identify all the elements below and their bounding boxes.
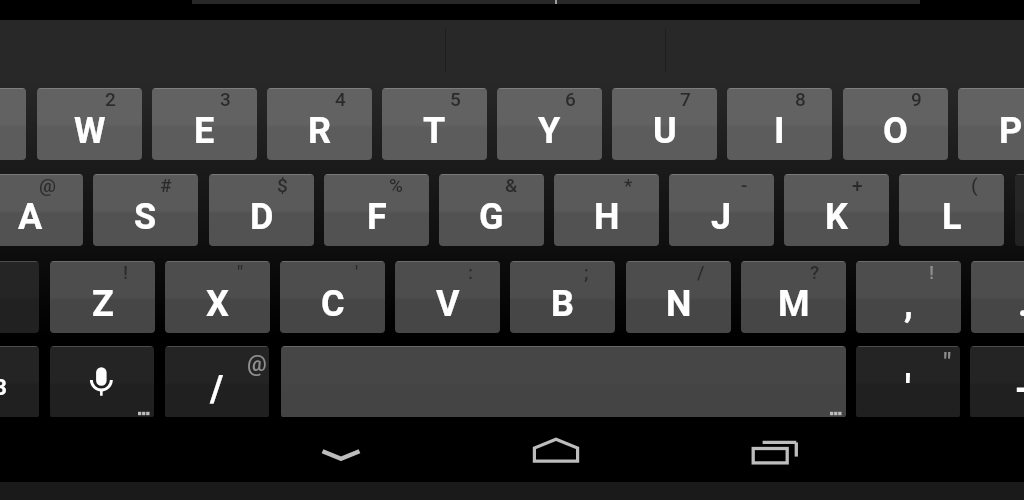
button[interactable]: Hide keyboard bbox=[291, 417, 391, 482]
staticText: R bbox=[308, 110, 331, 152]
button[interactable]: V bbox=[395, 261, 500, 333]
staticText: P bbox=[999, 110, 1023, 152]
staticText: A bbox=[18, 196, 43, 238]
staticText: ' bbox=[355, 261, 359, 283]
button[interactable]: , bbox=[856, 261, 961, 333]
staticText: M bbox=[778, 283, 810, 325]
staticText: / bbox=[210, 368, 224, 410]
staticText: J bbox=[711, 196, 732, 238]
button[interactable]: D bbox=[209, 174, 314, 246]
staticText: 9 bbox=[911, 88, 922, 110]
staticText: B bbox=[551, 283, 574, 325]
button[interactable]: L bbox=[899, 174, 1004, 246]
staticText: W bbox=[74, 110, 106, 152]
button[interactable]: B bbox=[510, 261, 615, 333]
staticText: , bbox=[904, 283, 913, 325]
button[interactable]: H bbox=[554, 174, 659, 246]
staticText: 4 bbox=[335, 88, 346, 110]
staticText: + bbox=[852, 174, 863, 196]
staticText: F bbox=[367, 196, 387, 238]
staticText: C bbox=[321, 283, 345, 325]
staticText: " bbox=[237, 261, 244, 283]
staticText: " bbox=[943, 347, 952, 377]
button[interactable]: G bbox=[439, 174, 544, 246]
button[interactable]: F bbox=[324, 174, 429, 246]
staticText: 3 bbox=[220, 88, 231, 110]
button[interactable]: . bbox=[971, 261, 1024, 333]
staticText: 6 bbox=[565, 88, 576, 110]
staticText: O bbox=[883, 110, 908, 152]
button[interactable]: Shift bbox=[0, 261, 39, 333]
staticText: : bbox=[468, 261, 474, 283]
staticText: 2 bbox=[105, 88, 116, 110]
button[interactable]: E bbox=[152, 88, 257, 160]
button[interactable]: Q bbox=[0, 88, 26, 160]
button[interactable]: Enter bbox=[1015, 174, 1024, 246]
staticText: * bbox=[624, 174, 633, 196]
button[interactable]: Space bbox=[281, 346, 846, 418]
staticText: / bbox=[697, 261, 705, 283]
staticText: Y bbox=[538, 110, 561, 152]
staticText: L bbox=[942, 196, 962, 238]
button[interactable]: J bbox=[669, 174, 774, 246]
button[interactable]: Apostrophe bbox=[856, 346, 960, 418]
button[interactable]: P bbox=[958, 88, 1024, 160]
button[interactable]: C bbox=[280, 261, 385, 333]
staticText: 7 bbox=[680, 88, 691, 110]
staticText: & bbox=[505, 174, 518, 196]
button[interactable]: Dash bbox=[970, 346, 1024, 418]
staticText: X bbox=[206, 283, 229, 325]
button[interactable]: R bbox=[267, 88, 372, 160]
button[interactable]: Recent apps bbox=[723, 417, 823, 482]
staticText: E bbox=[194, 110, 215, 152]
button[interactable]: Y bbox=[497, 88, 602, 160]
staticText: V bbox=[436, 283, 460, 325]
button[interactable]: W bbox=[37, 88, 142, 160]
staticText: @ bbox=[247, 351, 267, 377]
button[interactable]: T bbox=[382, 88, 487, 160]
staticText: K bbox=[825, 196, 848, 238]
staticText: U bbox=[653, 110, 677, 152]
staticText: D bbox=[250, 196, 274, 238]
staticText: H bbox=[594, 196, 620, 238]
button[interactable]: Slash bbox=[165, 346, 269, 418]
staticText: I bbox=[774, 110, 785, 152]
staticText: ( bbox=[971, 174, 978, 196]
button[interactable]: U bbox=[612, 88, 717, 160]
button[interactable]: M bbox=[741, 261, 846, 333]
staticText: ' bbox=[905, 368, 911, 410]
staticText: # bbox=[160, 174, 172, 196]
staticText: S bbox=[134, 196, 157, 238]
button[interactable]: Z bbox=[50, 261, 155, 333]
staticText: $ bbox=[277, 174, 288, 196]
button[interactable]: Home bbox=[506, 417, 606, 482]
staticText: . bbox=[1018, 283, 1024, 325]
button[interactable]: X bbox=[165, 261, 270, 333]
staticText: 8 bbox=[795, 88, 806, 110]
staticText: Z bbox=[92, 283, 114, 325]
button[interactable]: A bbox=[0, 174, 83, 246]
staticText: @ bbox=[39, 174, 57, 196]
staticText: ! bbox=[929, 261, 935, 283]
staticText: ?123 bbox=[0, 374, 7, 400]
staticText: % bbox=[389, 174, 403, 196]
button[interactable]: O bbox=[843, 88, 948, 160]
staticText: N bbox=[666, 283, 692, 325]
button[interactable]: S bbox=[93, 174, 198, 246]
button[interactable]: Voice input bbox=[50, 346, 154, 418]
staticText: ; bbox=[584, 261, 589, 283]
button[interactable]: I bbox=[727, 88, 832, 160]
staticText: - bbox=[741, 174, 748, 196]
staticText: - bbox=[1015, 368, 1024, 410]
staticText: G bbox=[479, 196, 504, 238]
staticText: ! bbox=[123, 261, 129, 283]
staticText: ? bbox=[810, 261, 820, 283]
button[interactable]: K bbox=[784, 174, 889, 246]
staticText: T bbox=[423, 110, 446, 152]
button[interactable]: N bbox=[626, 261, 731, 333]
staticText: 5 bbox=[450, 88, 461, 110]
button[interactable]: Symbols bbox=[0, 346, 39, 418]
